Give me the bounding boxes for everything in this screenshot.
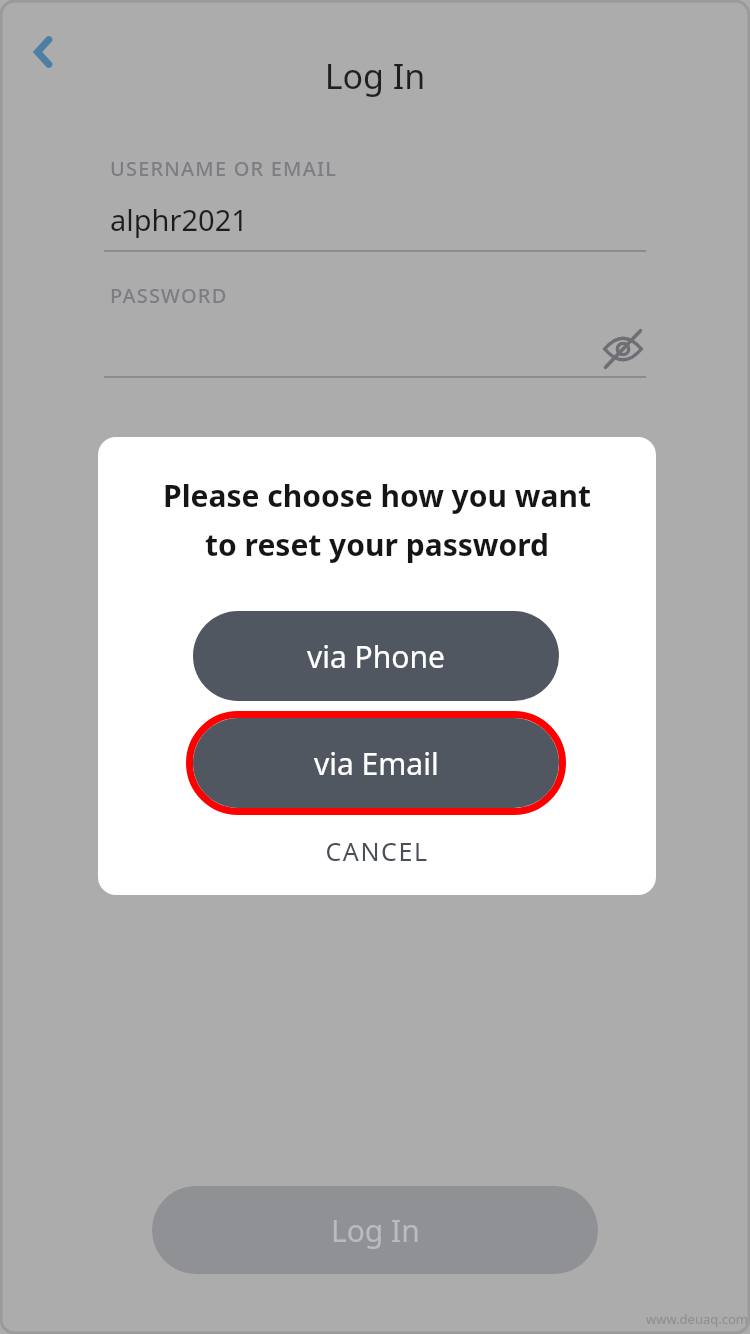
staticText: via Phone [307,636,445,677]
staticText: PASSWORD [110,282,228,309]
staticText: Please choose how you want to reset your… [98,475,656,565]
button[interactable]: Back [18,24,74,80]
button[interactable]: via Phone [193,611,559,701]
button[interactable]: via Email [186,711,566,815]
button[interactable]: Show password [596,322,650,376]
staticText: CANCEL [325,834,429,868]
staticText: USERNAME OR EMAIL [110,155,338,182]
staticText: via Email [314,743,439,784]
staticText: www.deuaq.com [646,1310,749,1328]
staticText: alphr2021 [110,200,248,239]
staticText: Log In [331,1210,420,1251]
button[interactable]: Log In [152,1186,598,1274]
button[interactable]: CANCEL [98,823,656,879]
staticText: Log In [0,53,750,99]
